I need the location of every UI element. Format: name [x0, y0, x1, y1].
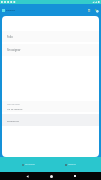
- button[interactable]: Sync: [94, 8, 99, 13]
- staticText: Sandbox: [6, 9, 16, 12]
- button[interactable]: Tipo de falla: [2, 101, 99, 112]
- staticText: No se reporta: [7, 107, 23, 110]
- button[interactable]: Home: [47, 172, 55, 180]
- button[interactable]: Folio: [2, 31, 99, 42]
- button[interactable]: Recents: [71, 172, 79, 180]
- staticText: Sin asignar: [7, 48, 21, 52]
- staticText: GUARDAR: [25, 163, 35, 166]
- button[interactable]: Sin asignar: [2, 44, 99, 56]
- button[interactable]: Back: [23, 172, 31, 180]
- button[interactable]: Menu: [1, 8, 5, 12]
- button[interactable]: GUARDAR: [21, 161, 36, 168]
- staticText: CERRAR: [68, 163, 76, 166]
- button[interactable]: Referencia: [2, 114, 99, 126]
- staticText: Referencia: [7, 119, 19, 122]
- staticText: Tipo de falla: [7, 103, 20, 106]
- staticText: Folio: [7, 35, 13, 39]
- button[interactable]: CERRAR: [64, 161, 77, 168]
- button[interactable]: Documents: [87, 8, 92, 13]
